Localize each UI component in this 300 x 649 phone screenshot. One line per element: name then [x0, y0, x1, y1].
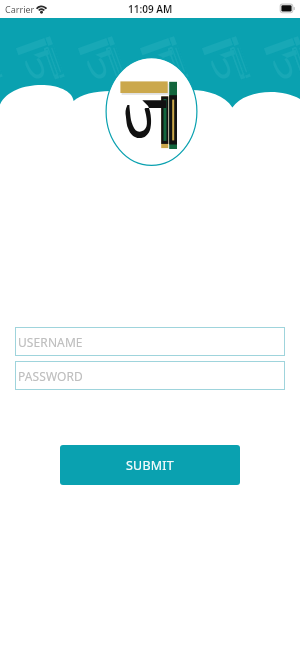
button[interactable]: USERNAME — [15, 327, 285, 356]
button[interactable]: PASSWORD — [15, 361, 285, 390]
staticText: PASSWORD — [18, 368, 83, 384]
staticText: USERNAME — [18, 334, 83, 350]
other: Wi-Fi signal — [35, 3, 48, 15]
button[interactable]: SUBMIT — [60, 445, 240, 485]
staticText: 11:09 AM — [128, 2, 173, 16]
staticText: Carrier — [5, 3, 35, 15]
staticText: SUBMIT — [126, 457, 174, 474]
